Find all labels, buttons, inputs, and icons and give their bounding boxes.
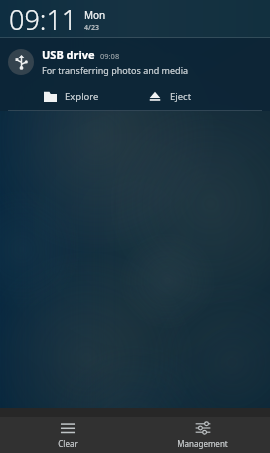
staticText: 4/23 [84, 23, 99, 33]
staticText: Eject [170, 90, 192, 103]
button[interactable]: Eject [135, 82, 270, 110]
button[interactable]: Explore [0, 82, 135, 110]
other: Explore [44, 90, 57, 103]
other: Eject [149, 90, 161, 102]
other: Management [195, 421, 211, 435]
staticText: 09:08 [100, 51, 120, 61]
staticText: Clear [58, 438, 78, 449]
staticText: Explore [65, 90, 99, 103]
staticText: Mon [84, 8, 106, 22]
staticText: For transferring photos and media [42, 64, 189, 76]
other: USB [14, 55, 29, 70]
staticText: USB drive [42, 47, 95, 62]
staticText: Management [177, 438, 228, 449]
button[interactable]: Management [135, 417, 270, 453]
other: Clear [60, 421, 76, 435]
button[interactable]: Clear [0, 417, 135, 453]
staticText: 09:11 [9, 1, 78, 38]
button[interactable]: USB [0, 38, 270, 82]
